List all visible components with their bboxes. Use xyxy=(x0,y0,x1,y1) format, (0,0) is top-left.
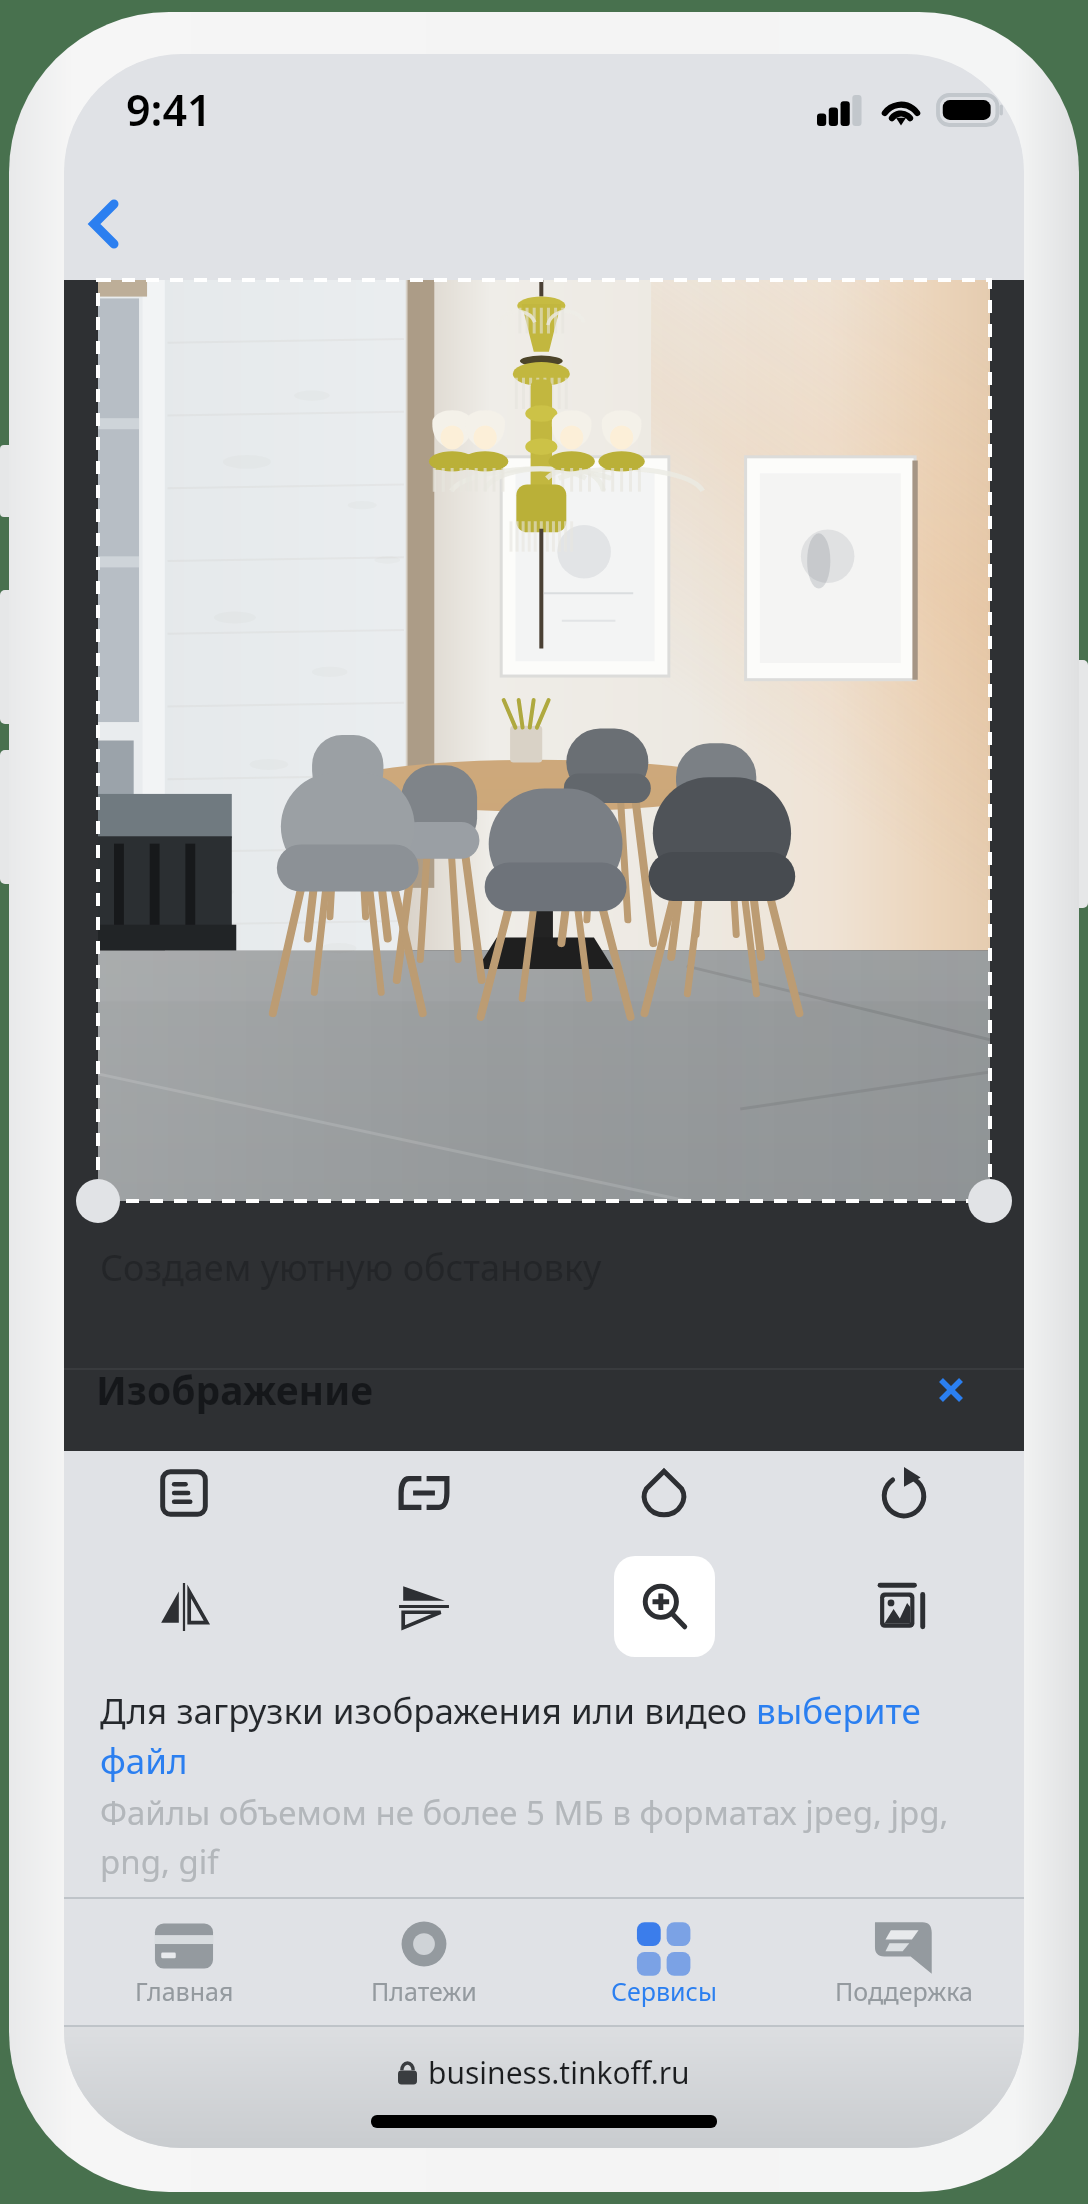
button[interactable]: Платежи xyxy=(304,1912,544,2013)
button[interactable]: Поддержка xyxy=(784,1912,1024,2013)
staticText: Изображение xyxy=(96,1363,374,1416)
staticText: Файлы объемом не более 5 МБ в форматах j… xyxy=(100,1790,994,1883)
staticText: Поддержка xyxy=(835,1974,973,2008)
button[interactable]: Back xyxy=(64,181,147,267)
staticText: Платежи xyxy=(371,1974,477,2008)
button[interactable]: Gallery xyxy=(862,1564,946,1648)
button[interactable]: Сервисы xyxy=(544,1912,784,2013)
button[interactable]: Alt text xyxy=(142,1451,226,1535)
button[interactable]: Close xyxy=(920,1359,982,1421)
staticText: Для загрузки изображения или видео выбер… xyxy=(100,1687,994,1784)
staticText: Главная xyxy=(135,1974,234,2008)
staticText: 9:41 xyxy=(126,80,212,139)
button[interactable]: Flip vertical xyxy=(382,1564,466,1648)
staticText: Сервисы xyxy=(611,1974,717,2008)
staticText: Создаем уютную обстановку xyxy=(100,1243,602,1292)
button[interactable]: Zoom xyxy=(614,1556,715,1657)
button[interactable]: Rotate xyxy=(862,1451,946,1535)
button[interactable]: Главная xyxy=(64,1912,304,2013)
button[interactable]: Flip horizontal xyxy=(142,1564,226,1648)
button[interactable]: Color xyxy=(622,1451,706,1535)
button[interactable]: Link xyxy=(382,1451,466,1535)
staticText: business.tinkoff.ru xyxy=(428,2052,690,2093)
